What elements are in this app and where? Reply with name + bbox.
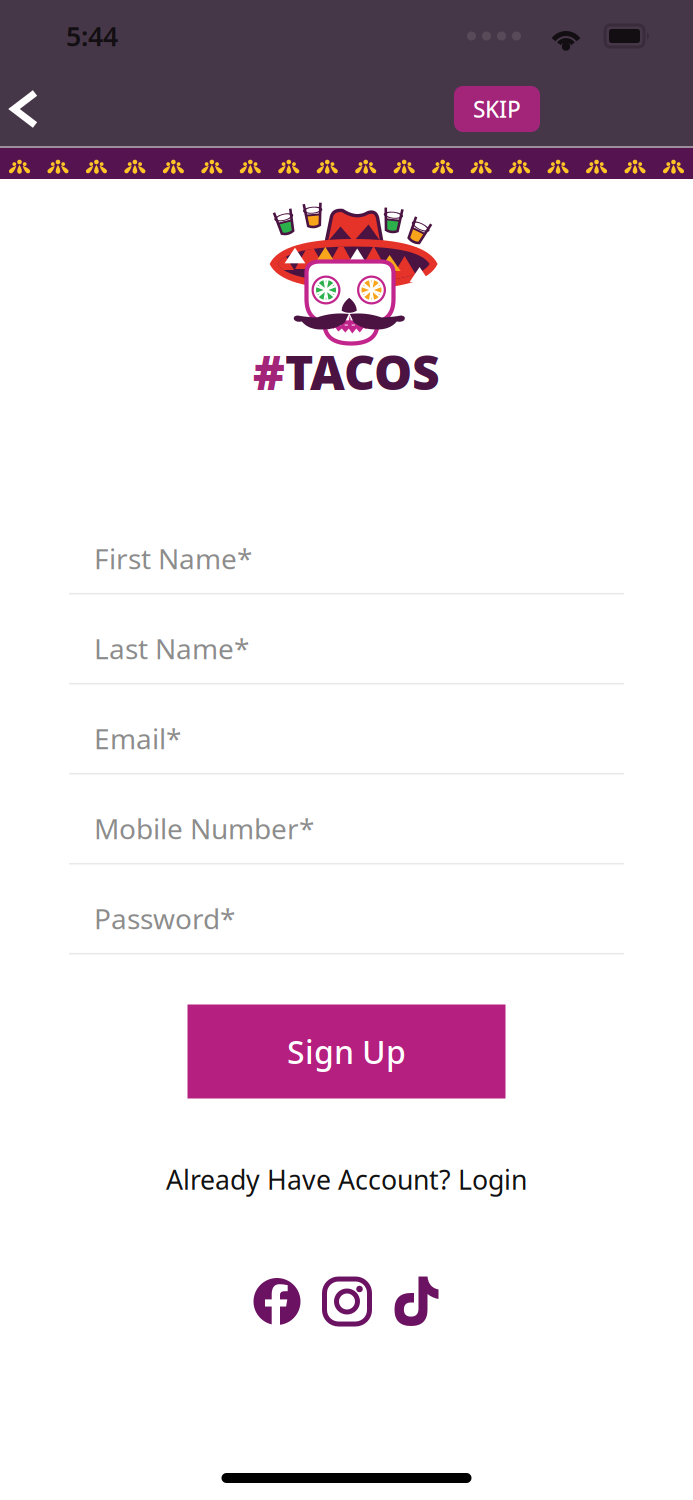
- staticText: SKIP: [473, 94, 521, 124]
- staticText: #: [253, 340, 285, 403]
- staticText: Password*: [94, 900, 235, 937]
- button[interactable]: Password*: [69, 864, 624, 954]
- staticText: Last Name*: [94, 630, 249, 667]
- staticText: 5:44: [66, 18, 118, 54]
- staticText: Email*: [94, 720, 181, 757]
- staticText: First Name*: [94, 540, 252, 577]
- staticText: TACOS: [285, 340, 440, 403]
- button[interactable]: Sign Up: [187, 1004, 505, 1098]
- button[interactable]: Facebook: [253, 1278, 300, 1325]
- button[interactable]: Last Name*: [69, 594, 624, 684]
- staticText: Sign Up: [287, 1030, 406, 1073]
- button[interactable]: Back: [0, 73, 58, 145]
- staticText: Mobile Number*: [94, 810, 314, 847]
- button[interactable]: First Name*: [69, 504, 624, 594]
- button[interactable]: Mobile Number*: [69, 774, 624, 864]
- button[interactable]: TikTok: [393, 1275, 439, 1327]
- button[interactable]: SKIP: [454, 86, 540, 132]
- button[interactable]: Instagram: [323, 1278, 370, 1325]
- button[interactable]: Email*: [69, 684, 624, 774]
- button[interactable]: Already Have Account? Login: [166, 1160, 527, 1198]
- staticText: Already Have Account? Login: [166, 1162, 527, 1197]
